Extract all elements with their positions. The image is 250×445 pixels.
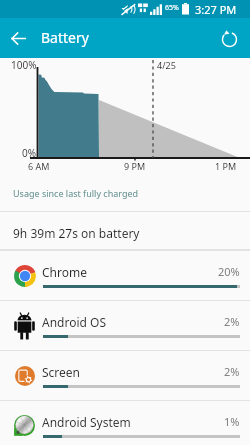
staticText: 1 PM <box>215 160 237 172</box>
staticText: 0% <box>22 146 37 160</box>
button[interactable]: Refresh <box>216 26 242 52</box>
staticText: 9 PM <box>124 160 146 172</box>
staticText: Usage since last fully charged <box>13 187 139 199</box>
staticText: 100% <box>11 58 37 72</box>
staticText: 3:27 PM <box>195 2 237 17</box>
staticText: 65% <box>165 3 179 13</box>
button[interactable]: Chrome <box>0 250 250 300</box>
staticText: Chrome <box>42 264 87 280</box>
staticText: 20% <box>218 264 240 279</box>
staticText: 2% <box>224 364 240 379</box>
staticText: 9h 39m 27s on battery <box>13 225 140 241</box>
staticText: Android System <box>42 414 131 430</box>
staticText: 6 AM <box>28 160 50 172</box>
staticText: 4/25 <box>157 59 176 71</box>
staticText: Android OS <box>42 314 106 330</box>
button[interactable]: Android OS <box>0 300 250 350</box>
button[interactable]: Back <box>6 26 30 50</box>
staticText: 1% <box>224 414 240 429</box>
button[interactable]: Screen <box>0 350 250 400</box>
staticText: Battery <box>41 28 89 47</box>
staticText: Screen <box>42 364 81 380</box>
button[interactable]: Android System <box>0 400 250 445</box>
staticText: 2% <box>224 314 240 329</box>
